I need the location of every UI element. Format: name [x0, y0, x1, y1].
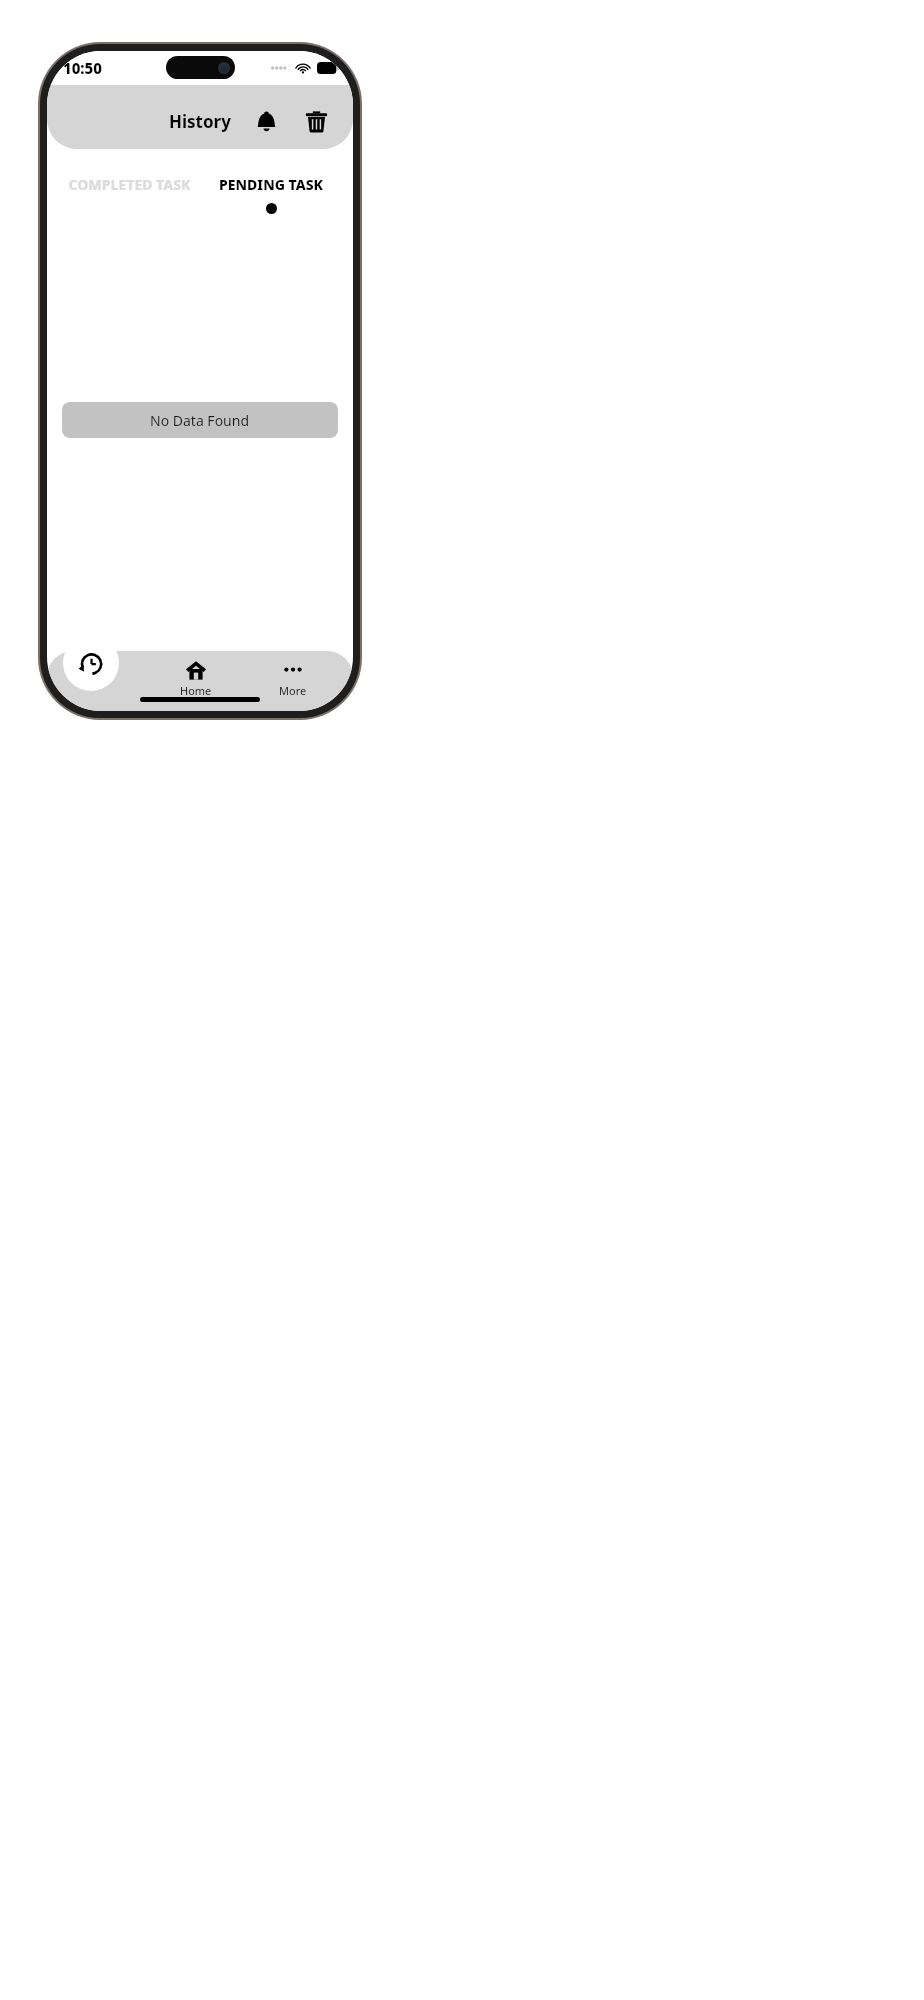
staticText: More [279, 683, 307, 698]
button[interactable]: Home [147, 651, 244, 711]
button[interactable]: COMPLETED TASK [59, 175, 200, 214]
button[interactable]: Delete all [297, 102, 335, 140]
staticText: Home [180, 683, 212, 698]
staticText: No Data Found [150, 411, 250, 430]
staticText: PENDING TASK [219, 175, 323, 194]
staticText: COMPLETED TASK [68, 175, 191, 194]
button[interactable]: Notifications [247, 102, 285, 140]
staticText: 10:50 [63, 58, 102, 78]
button[interactable]: No Data Found [62, 402, 338, 438]
staticText: History [169, 110, 231, 133]
button[interactable]: PENDING TASK [200, 175, 341, 214]
button[interactable]: History [63, 635, 119, 691]
button[interactable]: More [244, 651, 341, 711]
